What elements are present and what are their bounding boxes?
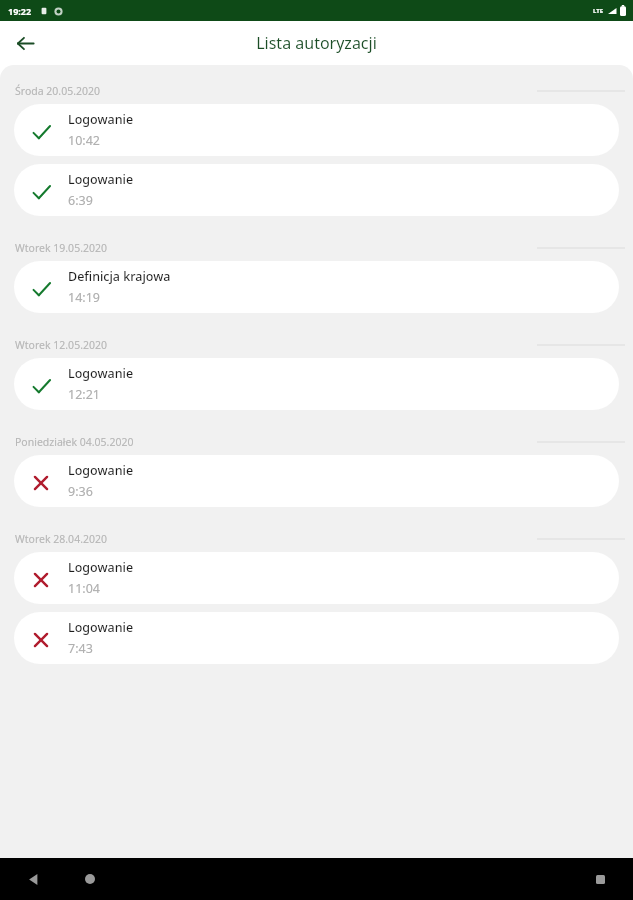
- staticText: 19:22: [8, 5, 32, 17]
- staticText: 9:36: [68, 483, 93, 500]
- button[interactable]: Recent apps: [585, 864, 615, 894]
- staticText: Definicja krajowa: [68, 268, 171, 285]
- staticText: Poniedziałek 04.05.2020: [15, 435, 134, 449]
- staticText: 11:04: [68, 580, 100, 597]
- staticText: LTE: [593, 7, 604, 15]
- staticText: 12:21: [68, 386, 100, 403]
- staticText: Logowanie: [68, 171, 134, 188]
- button[interactable]: Logowanie: [14, 104, 619, 156]
- staticText: Logowanie: [68, 111, 134, 128]
- staticText: 10:42: [68, 132, 100, 149]
- button[interactable]: Logowanie: [14, 358, 619, 410]
- button[interactable]: Logowanie: [14, 455, 619, 507]
- staticText: Wtorek 28.04.2020: [15, 532, 107, 546]
- button[interactable]: Logowanie: [14, 164, 619, 216]
- staticText: 14:19: [68, 289, 100, 306]
- staticText: Wtorek 19.05.2020: [15, 241, 107, 255]
- button[interactable]: Logowanie: [14, 552, 619, 604]
- button[interactable]: Back: [8, 26, 42, 60]
- staticText: Logowanie: [68, 559, 134, 576]
- staticText: Logowanie: [68, 619, 134, 636]
- staticText: Środa 20.05.2020: [15, 84, 100, 98]
- button[interactable]: Definicja krajowa: [14, 261, 619, 313]
- staticText: 6:39: [68, 192, 93, 209]
- staticText: 7:43: [68, 640, 93, 657]
- button[interactable]: Home: [75, 864, 105, 894]
- staticText: Wtorek 12.05.2020: [15, 338, 107, 352]
- button[interactable]: Back: [18, 864, 48, 894]
- staticText: Logowanie: [68, 365, 134, 382]
- staticText: Logowanie: [68, 462, 134, 479]
- staticText: Lista autoryzacji: [256, 32, 377, 54]
- button[interactable]: Logowanie: [14, 612, 619, 664]
